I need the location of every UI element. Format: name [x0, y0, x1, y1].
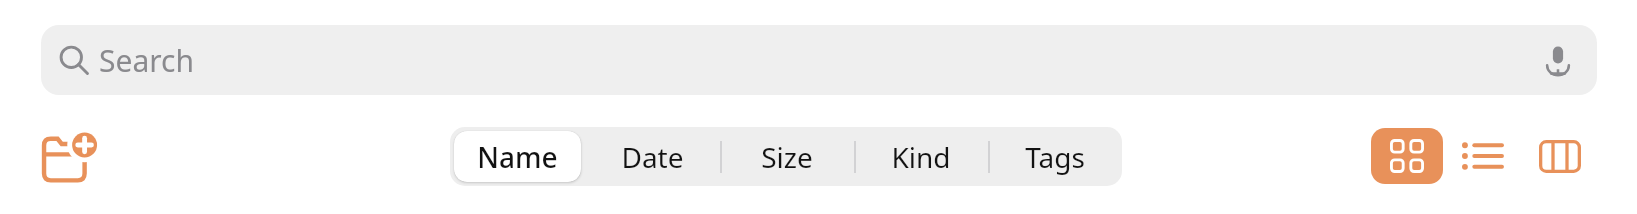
button[interactable]: Column view: [1528, 128, 1592, 184]
button[interactable]: Date: [585, 127, 720, 186]
button[interactable]: Kind: [854, 127, 988, 186]
button[interactable]: Name: [454, 131, 581, 182]
button[interactable]: Search: [41, 25, 1597, 95]
button[interactable]: Size: [720, 127, 854, 186]
other: Voice search: [1541, 43, 1575, 77]
button[interactable]: New folder: [36, 125, 102, 191]
staticText: Tags: [1025, 138, 1085, 176]
staticText: Date: [621, 138, 684, 176]
staticText: Kind: [891, 138, 951, 176]
staticText: Size: [761, 138, 813, 176]
button[interactable]: List view: [1452, 128, 1512, 184]
staticText: Search: [99, 40, 194, 81]
button[interactable]: Grid view: [1371, 128, 1443, 184]
staticText: Name: [477, 138, 558, 176]
button[interactable]: Tags: [988, 127, 1122, 186]
